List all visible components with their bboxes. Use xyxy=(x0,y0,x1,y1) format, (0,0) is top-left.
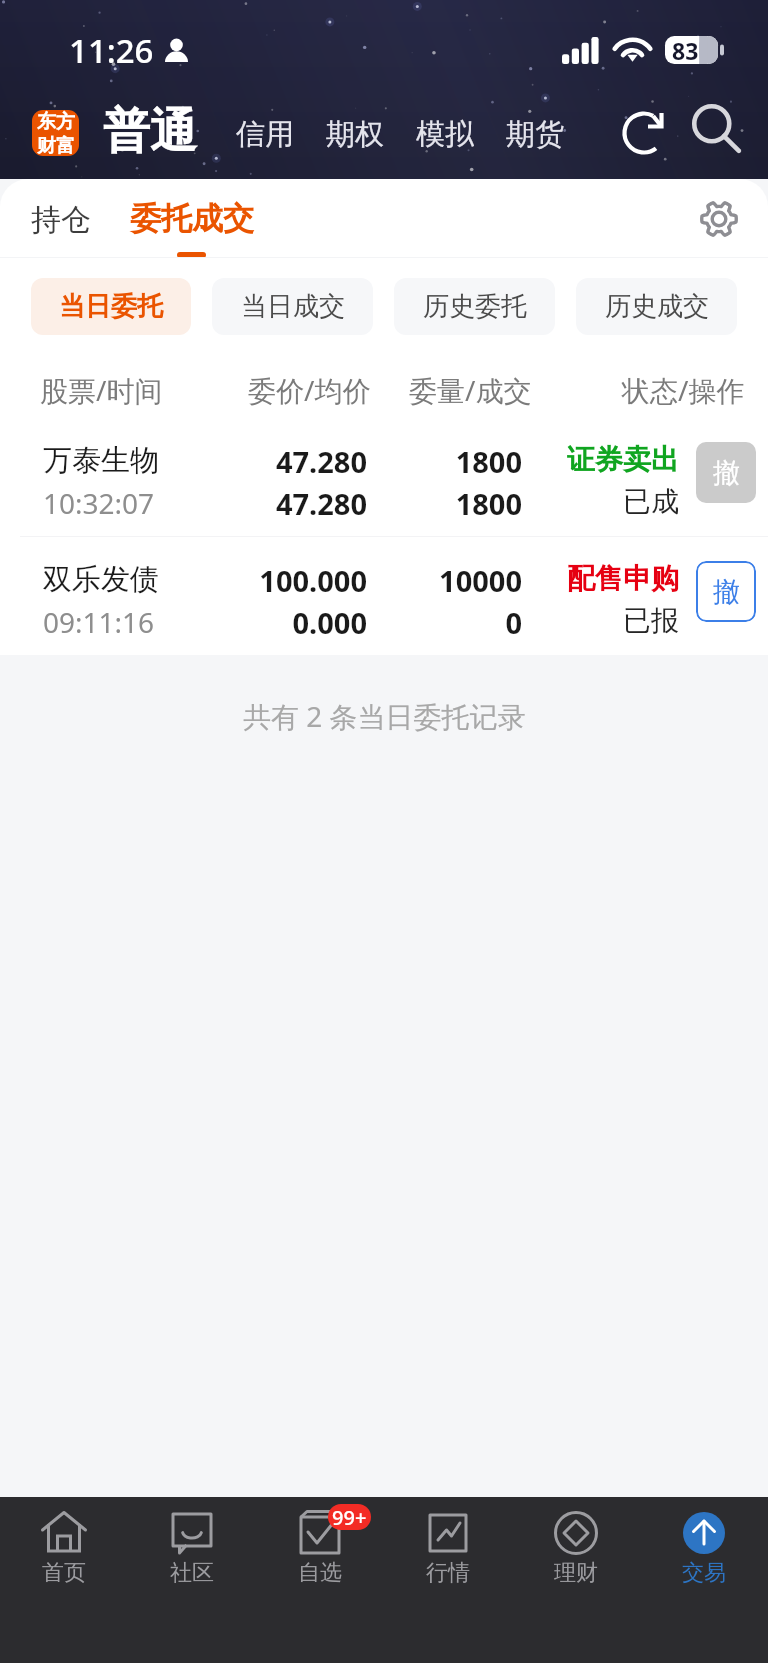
button[interactable]: Search xyxy=(686,98,742,154)
button[interactable]: 双乐发债 xyxy=(0,537,768,655)
staticText: 社区 xyxy=(170,1559,214,1587)
staticText: 财富 xyxy=(37,134,75,156)
button[interactable]: 东方财富 xyxy=(32,110,79,156)
button[interactable]: Refresh xyxy=(616,105,672,161)
staticText: 持仓 xyxy=(31,201,91,239)
button[interactable]: 首页 xyxy=(0,1497,128,1587)
staticText: 状态/操作 xyxy=(622,371,745,409)
button[interactable]: 历史委托 xyxy=(394,278,555,335)
staticText: 期权 xyxy=(326,116,384,153)
button[interactable]: 持仓 xyxy=(21,179,101,258)
button[interactable]: 当日成交 xyxy=(212,278,373,335)
staticText: 双乐发债 xyxy=(43,561,159,598)
button[interactable]: 模拟 xyxy=(400,116,490,153)
staticText: 83 xyxy=(672,35,699,63)
button[interactable]: 理财 xyxy=(512,1497,640,1587)
staticText: 证券卖出 xyxy=(539,442,679,477)
button[interactable]: 99+ xyxy=(256,1497,384,1587)
staticText: 1800 xyxy=(372,484,522,523)
staticText: 理财 xyxy=(554,1559,598,1587)
button[interactable]: 撤 xyxy=(696,561,756,622)
staticText: 10:32:07 xyxy=(43,484,155,522)
staticText: 已成 xyxy=(539,484,679,519)
staticText: 期货 xyxy=(506,116,564,153)
staticText: 万泰生物 xyxy=(43,442,159,479)
staticText: 配售申购 xyxy=(539,561,679,596)
button[interactable]: 行情 xyxy=(384,1497,512,1587)
staticText: 已报 xyxy=(539,603,679,638)
staticText: 撤 xyxy=(713,456,740,490)
staticText: 11:26 xyxy=(69,28,154,73)
staticText: 股票/时间 xyxy=(40,371,163,409)
staticText: 模拟 xyxy=(416,116,474,153)
staticText: 0.000 xyxy=(167,603,367,642)
staticText: 历史委托 xyxy=(423,290,527,323)
staticText: 交易 xyxy=(682,1559,726,1587)
button[interactable]: Settings xyxy=(696,196,742,242)
staticText: 信用 xyxy=(236,116,294,153)
button[interactable]: 当日委托 xyxy=(31,278,191,335)
staticText: 47.280 xyxy=(167,442,367,481)
button[interactable]: 社区 xyxy=(128,1497,256,1587)
button[interactable]: 万泰生物 xyxy=(0,418,768,536)
staticText: 当日委托 xyxy=(59,290,163,323)
staticText: 47.280 xyxy=(167,484,367,523)
button[interactable]: 普通 xyxy=(103,102,197,161)
button[interactable]: 委托成交 xyxy=(120,179,264,258)
button[interactable]: 撤 xyxy=(696,442,756,503)
staticText: 共有 2 条当日委托记录 xyxy=(243,697,526,735)
staticText: 撤 xyxy=(713,575,740,609)
button[interactable]: 历史成交 xyxy=(576,278,737,335)
staticText: 委价/均价 xyxy=(248,371,371,409)
staticText: 委量/成交 xyxy=(409,371,532,409)
staticText: 0 xyxy=(372,603,522,642)
staticText: 99+ xyxy=(332,1504,367,1530)
staticText: 东方 xyxy=(37,110,75,134)
staticText: 首页 xyxy=(42,1559,86,1587)
button[interactable]: 期货 xyxy=(490,116,580,153)
staticText: 委托成交 xyxy=(130,199,254,238)
staticText: 行情 xyxy=(426,1559,470,1587)
button[interactable]: 交易 xyxy=(640,1497,768,1587)
staticText: 1800 xyxy=(372,442,522,481)
staticText: 09:11:16 xyxy=(43,603,155,641)
button[interactable]: 信用 xyxy=(220,116,310,153)
staticText: 100.000 xyxy=(167,561,367,600)
button[interactable]: 期权 xyxy=(310,116,400,153)
staticText: 当日成交 xyxy=(241,290,345,323)
staticText: 自选 xyxy=(298,1559,342,1587)
staticText: 历史成交 xyxy=(605,290,709,323)
staticText: 10000 xyxy=(372,561,522,600)
